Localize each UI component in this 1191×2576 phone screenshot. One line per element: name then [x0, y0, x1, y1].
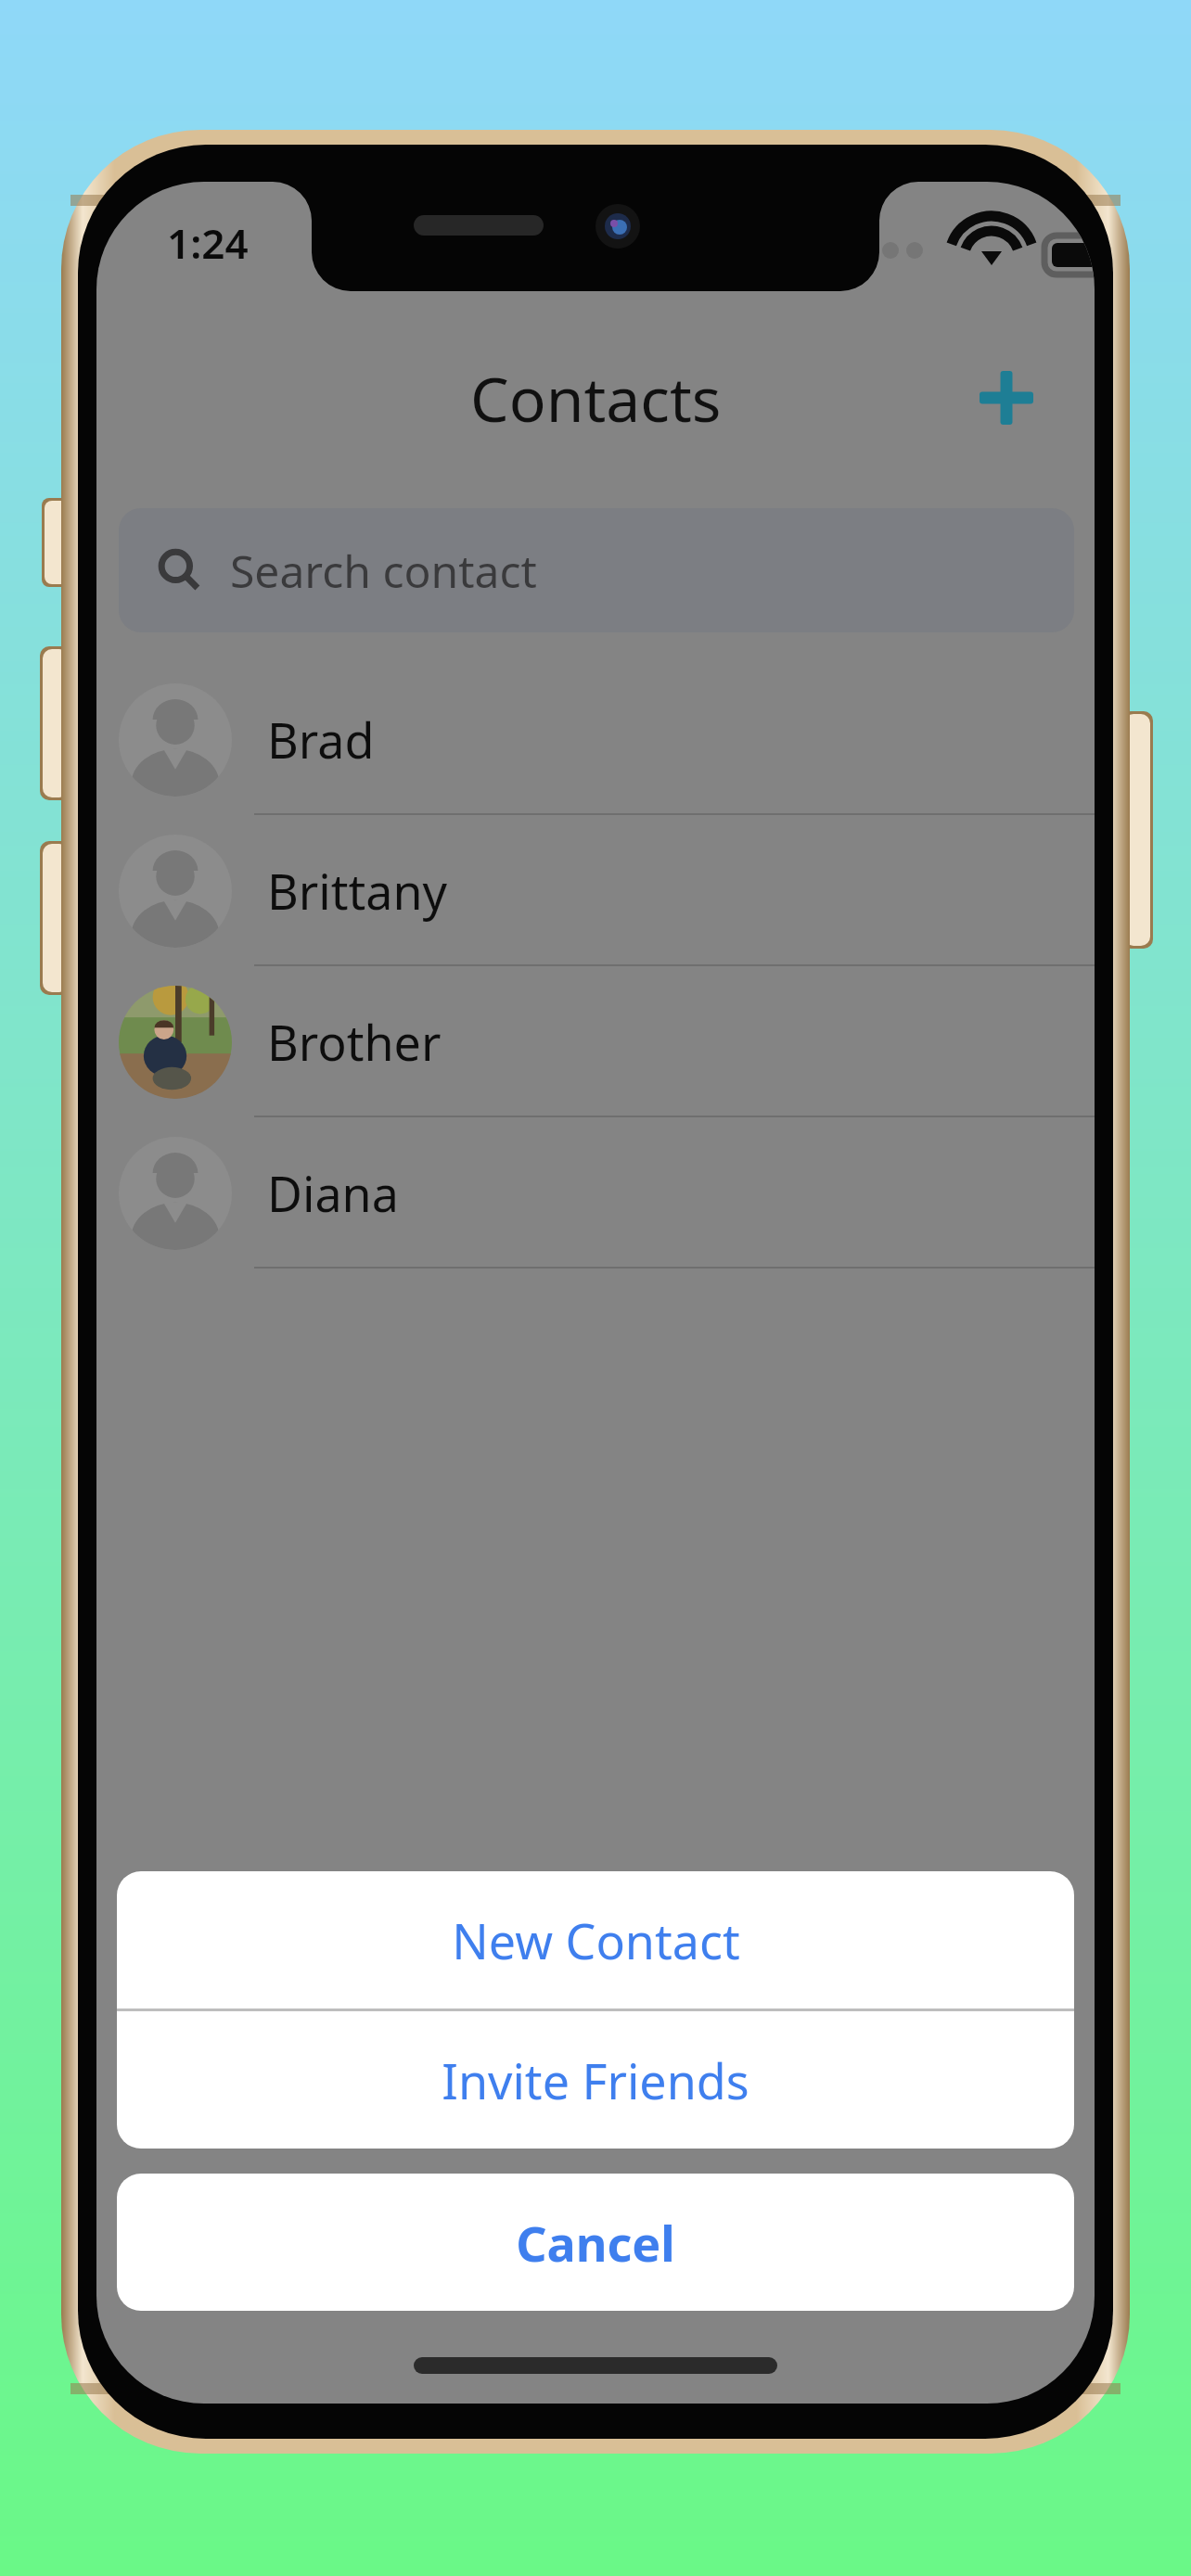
button[interactable]: Search contact [119, 508, 1074, 632]
button[interactable]: Brother [96, 966, 1095, 1117]
button[interactable]: Cancel [117, 2174, 1074, 2311]
button[interactable]: New Contact [117, 1871, 1074, 2009]
staticText: New Contact [452, 1907, 740, 1973]
button[interactable]: Diana [96, 1117, 1095, 1269]
button[interactable]: Add contact [955, 347, 1057, 449]
button[interactable]: Brad [96, 664, 1095, 815]
staticText: Brother [267, 1009, 442, 1075]
staticText: Search contact [230, 541, 537, 601]
staticText: Contacts [470, 356, 722, 440]
button[interactable]: Brittany [96, 815, 1095, 966]
staticText: Invite Friends [442, 2047, 749, 2113]
button[interactable]: Invite Friends [117, 2011, 1074, 2149]
staticText: 1:24 [167, 215, 249, 271]
staticText: Cancel [516, 2210, 675, 2276]
staticText: Diana [267, 1160, 399, 1226]
staticText: Brittany [267, 858, 448, 924]
staticText: Brad [267, 707, 375, 772]
